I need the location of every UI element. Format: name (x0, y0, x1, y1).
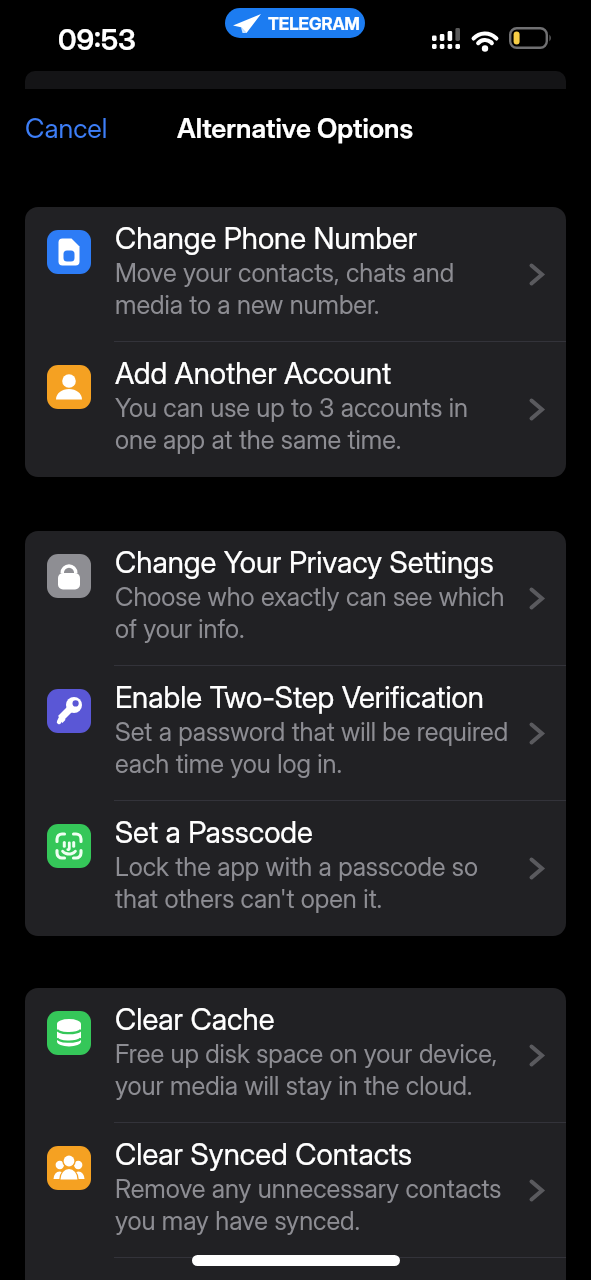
staticText: TELEGRAM (268, 14, 360, 35)
staticText: Add Another Account (115, 355, 392, 391)
button[interactable]: Clear Cache (25, 988, 566, 1123)
button[interactable]: Clear Synced Contacts (25, 1123, 566, 1258)
staticText: 09:53 (58, 22, 136, 57)
staticText: Choose who exactly can see which of your… (115, 581, 505, 645)
staticText: Free up disk space on your device, your … (115, 1038, 498, 1102)
staticText: Enable Two-Step Verification (115, 679, 484, 715)
staticText: Change Phone Number (115, 220, 418, 256)
button[interactable] (25, 1258, 566, 1280)
staticText: Set a Passcode (115, 814, 313, 850)
button[interactable]: Set a Passcode (25, 801, 566, 936)
button[interactable]: Change Your Privacy Settings (25, 531, 566, 666)
button[interactable]: Add Another Account (25, 342, 566, 477)
button[interactable]: Change Phone Number (25, 207, 566, 342)
button[interactable]: Enable Two-Step Verification (25, 666, 566, 801)
staticText: Alternative Options (177, 112, 414, 145)
staticText: You can use up to 3 accounts in one app … (115, 392, 468, 456)
staticText: Remove any unnecessary contacts you may … (115, 1173, 502, 1237)
button[interactable]: TELEGRAM (225, 8, 365, 38)
staticText: Clear Cache (115, 1001, 275, 1037)
button[interactable]: Cancel (16, 105, 99, 138)
staticText: Set a password that will be required eac… (115, 716, 509, 780)
staticText: Move your contacts, chats and media to a… (115, 257, 455, 321)
staticText: Cancel (25, 112, 108, 145)
staticText: Clear Synced Contacts (115, 1136, 412, 1172)
staticText: Lock the app with a passcode so that oth… (115, 851, 478, 915)
staticText: Change Your Privacy Settings (115, 544, 494, 580)
